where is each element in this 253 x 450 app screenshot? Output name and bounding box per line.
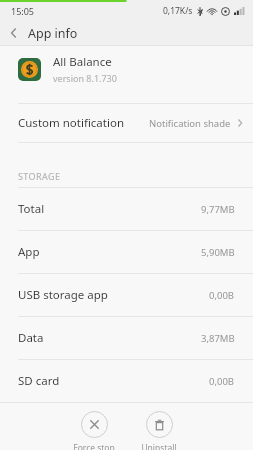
button[interactable]: Custom notification [0, 104, 253, 142]
staticText: Uninstall [141, 442, 177, 450]
staticText: version 8.1.730 [53, 72, 117, 84]
button[interactable]: Data [0, 317, 253, 359]
staticText: Total [18, 201, 45, 217]
staticText: All Balance [53, 54, 112, 70]
staticText: 5,90MB [201, 246, 235, 259]
button[interactable]: All Balance [0, 46, 253, 92]
button[interactable]: Uninstall [136, 404, 182, 450]
staticText: USB storage app [18, 287, 108, 303]
staticText: STORAGE [18, 170, 61, 182]
staticText: Data [18, 330, 44, 346]
staticText: Force stop [73, 442, 115, 450]
button[interactable]: Total [0, 188, 253, 230]
staticText: 0,00B [209, 375, 235, 388]
staticText: 15:05 [11, 5, 35, 17]
staticText: App [18, 244, 40, 260]
button[interactable]: USB storage app [0, 274, 253, 316]
button[interactable]: Back [0, 20, 28, 46]
staticText: 0,17K/s [163, 5, 193, 17]
button[interactable]: App [0, 231, 253, 273]
button[interactable]: Force stop [71, 404, 117, 450]
button[interactable]: SD card [0, 360, 253, 402]
staticText: Notification shade [149, 117, 231, 130]
staticText: Custom notification [18, 115, 124, 131]
staticText: App info [28, 25, 78, 42]
staticText: 3,87MB [201, 332, 235, 345]
staticText: 0,00B [209, 289, 235, 302]
staticText: 9,77MB [201, 203, 235, 216]
staticText: SD card [18, 373, 60, 389]
